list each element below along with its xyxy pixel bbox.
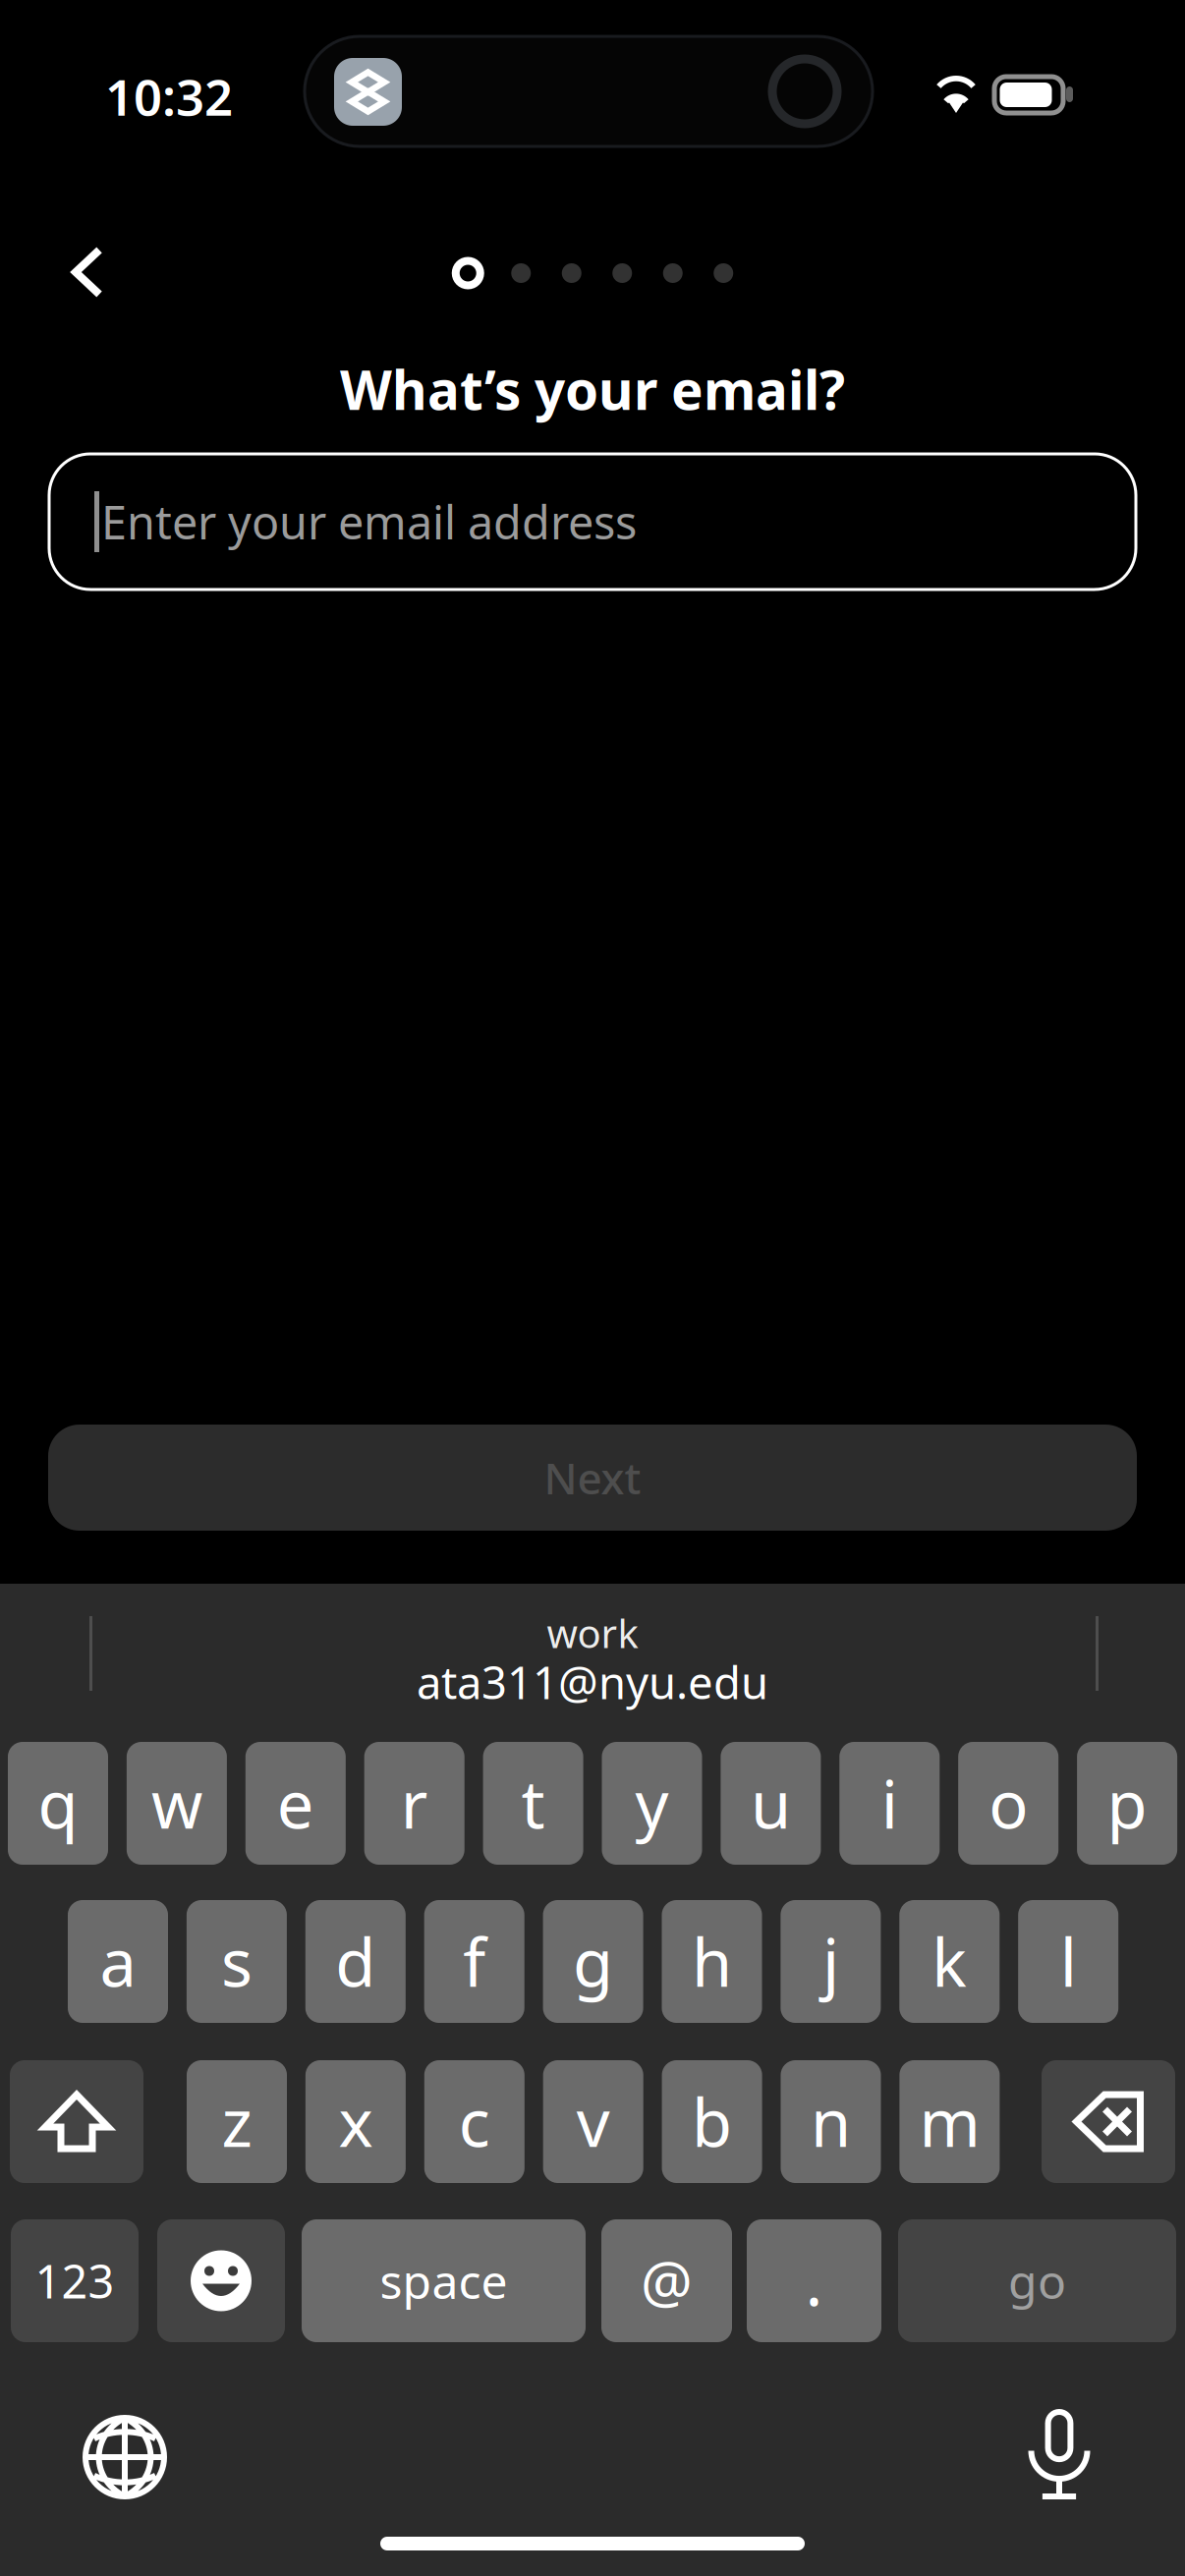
button[interactable]: j [781, 1900, 881, 2023]
button[interactable]: w [127, 1742, 227, 1865]
button[interactable]: s [187, 1900, 287, 2023]
staticText: work [547, 1607, 638, 1659]
staticText: w [151, 1760, 202, 1847]
staticText: j [822, 1918, 839, 2005]
staticText: o [989, 1760, 1028, 1847]
button[interactable]: u [721, 1742, 821, 1865]
staticText: What’s your email? [340, 353, 845, 425]
staticText: m [919, 2078, 980, 2165]
staticText: r [401, 1760, 428, 1847]
button[interactable]: v [543, 2060, 643, 2183]
staticText: y [635, 1760, 669, 1847]
button[interactable]: r [364, 1742, 464, 1865]
staticText: l [1060, 1918, 1077, 2005]
staticText: u [751, 1760, 791, 1847]
staticText: p [1107, 1760, 1147, 1847]
button[interactable]: n [781, 2060, 881, 2183]
button[interactable]: l [1018, 1900, 1118, 2023]
button[interactable]: m [899, 2060, 1000, 2183]
staticText: i [881, 1760, 898, 1847]
staticText: e [277, 1760, 314, 1847]
button[interactable]: Next [48, 1425, 1137, 1531]
staticText: t [521, 1760, 545, 1847]
button[interactable]: 123 [11, 2219, 139, 2342]
staticText: z [222, 2078, 252, 2165]
staticText: h [692, 1918, 732, 2005]
button[interactable]: . [747, 2219, 881, 2342]
button[interactable]: Enter your email address [49, 454, 1136, 589]
button[interactable]: go [898, 2219, 1176, 2342]
staticText: n [811, 2078, 851, 2165]
staticText: Next [544, 1449, 641, 1506]
staticText: q [38, 1760, 78, 1847]
staticText: k [932, 1918, 967, 2005]
staticText: s [221, 1918, 252, 2005]
button[interactable]: Switch keyboard [64, 2396, 186, 2518]
button[interactable]: a [68, 1900, 168, 2023]
button[interactable]: Dictate [998, 2393, 1120, 2515]
button[interactable]: Back [33, 218, 141, 326]
staticText: v [576, 2078, 610, 2165]
button[interactable]: i [839, 1742, 940, 1865]
staticText: . [805, 2237, 823, 2324]
staticText: a [100, 1918, 136, 2005]
button[interactable]: h [662, 1900, 762, 2023]
staticText: go [1008, 2249, 1066, 2312]
button[interactable]: Delete [1042, 2060, 1175, 2183]
button[interactable]: y [602, 1742, 702, 1865]
button[interactable]: q [8, 1742, 108, 1865]
button[interactable]: f [424, 1900, 524, 2023]
staticText: b [692, 2078, 732, 2165]
button[interactable]: space [302, 2219, 586, 2342]
staticText: ata311@nyu.edu [417, 1652, 768, 1712]
button[interactable]: x [305, 2060, 406, 2183]
button[interactable]: p [1077, 1742, 1177, 1865]
button[interactable]: @ [601, 2219, 732, 2342]
button[interactable]: t [483, 1742, 583, 1865]
button[interactable]: b [662, 2060, 762, 2183]
staticText: d [335, 1918, 376, 2005]
staticText: c [459, 2078, 490, 2165]
button[interactable]: z [187, 2060, 287, 2183]
staticText: 10:32 [105, 63, 233, 129]
staticText: g [573, 1918, 613, 2005]
button[interactable]: Emoji [157, 2219, 285, 2342]
button[interactable]: Shift [10, 2060, 143, 2183]
staticText: @ [641, 2242, 693, 2319]
staticText: x [338, 2078, 373, 2165]
button[interactable]: e [245, 1742, 346, 1865]
button[interactable]: d [305, 1900, 406, 2023]
button[interactable]: g [543, 1900, 643, 2023]
staticText: space [380, 2249, 508, 2312]
staticText: Enter your email address [101, 491, 637, 552]
staticText: f [463, 1918, 486, 2005]
button[interactable]: k [899, 1900, 1000, 2023]
button[interactable]: c [424, 2060, 525, 2183]
button[interactable]: o [958, 1742, 1058, 1865]
staticText: 123 [35, 2250, 114, 2311]
